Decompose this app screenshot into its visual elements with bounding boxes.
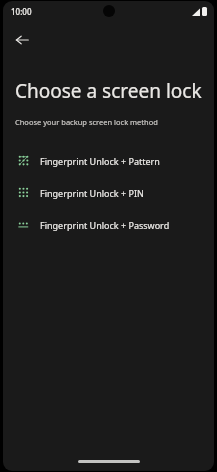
- button[interactable]: Back: [6, 24, 38, 56]
- staticText: Fingerprint Unlock + Pattern: [40, 155, 160, 167]
- button[interactable]: Fingerprint Unlock + Password: [3, 209, 214, 241]
- button[interactable]: Fingerprint Unlock + Pattern: [3, 145, 214, 177]
- staticText: Fingerprint Unlock + PIN: [40, 187, 144, 199]
- staticText: 10:00: [11, 6, 32, 17]
- button[interactable]: Fingerprint Unlock + PIN: [3, 177, 214, 209]
- staticText: Choose your backup screen lock method: [15, 117, 158, 127]
- staticText: Fingerprint Unlock + Password: [40, 219, 170, 231]
- staticText: Choose a screen lock: [15, 78, 202, 104]
